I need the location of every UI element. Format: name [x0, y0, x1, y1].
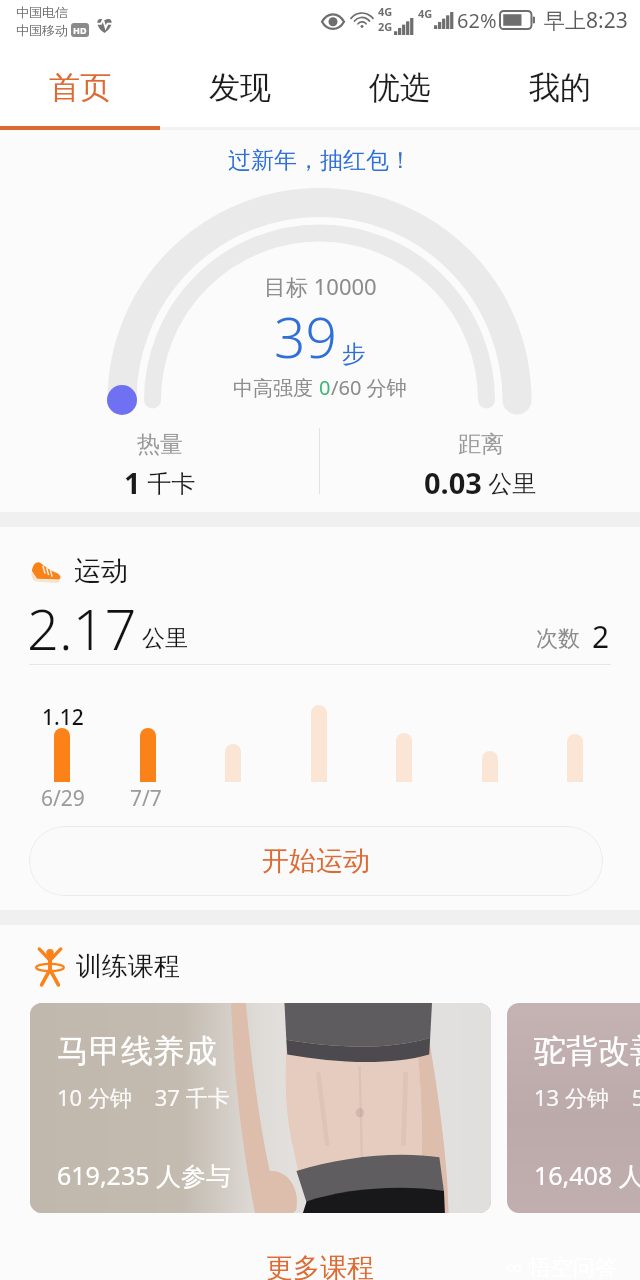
button[interactable]: 热量: [0, 413, 320, 499]
staticText: 更多课程: [266, 1251, 374, 1280]
button[interactable]: 首页: [0, 46, 160, 130]
button[interactable]: 运动: [26, 546, 142, 596]
staticText: 千卡: [141, 466, 196, 499]
staticText: 4G: [378, 4, 393, 19]
staticText: 62%: [457, 7, 497, 34]
staticText: 1: [124, 463, 141, 499]
staticText: HD: [73, 24, 87, 36]
staticText: 马甲线养成: [57, 1031, 217, 1071]
staticText: 0: [319, 374, 331, 401]
button[interactable]: 开始运动: [29, 826, 603, 896]
staticText: 发现: [209, 68, 271, 107]
staticText: 39: [274, 299, 337, 374]
staticText: 开始运动: [262, 844, 370, 878]
staticText: 热量: [137, 430, 183, 459]
staticText: 目标 10000: [264, 271, 377, 301]
staticText: 7/7: [130, 784, 162, 813]
staticText: 0.03: [424, 463, 482, 499]
staticText: 中国电信: [16, 4, 68, 20]
staticText: 早上8:23: [544, 6, 628, 35]
button[interactable]: 驼背改善: [507, 1003, 640, 1213]
staticText: 16,408 人: [534, 1158, 640, 1192]
staticText: 公里: [482, 466, 537, 499]
staticText: /60 分钟: [331, 374, 407, 401]
staticText: 我的: [529, 68, 591, 107]
button[interactable]: 我的: [480, 46, 640, 130]
button[interactable]: 优选: [320, 46, 480, 130]
staticText: 优选: [369, 68, 431, 107]
staticText: 运动: [74, 554, 128, 588]
staticText: 次数: [536, 625, 580, 653]
staticText: 中高强度: [233, 374, 319, 401]
button[interactable]: 马甲线养成: [30, 1003, 491, 1213]
button[interactable]: 过新年，抽红包！: [0, 137, 640, 183]
staticText: 13 分钟 5: [534, 1082, 640, 1112]
staticText: 6/29: [41, 784, 85, 813]
staticText: 步: [342, 339, 366, 369]
staticText: 距离: [458, 430, 504, 459]
button[interactable]: 训练课程: [31, 942, 186, 990]
button[interactable]: 更多课程: [0, 1243, 640, 1280]
button[interactable]: 距离: [320, 413, 640, 499]
staticText: 中国移动: [16, 22, 68, 38]
staticText: 2G: [378, 19, 393, 34]
staticText: 4G: [418, 6, 433, 21]
button[interactable]: 发现: [160, 46, 320, 130]
staticText: 公里: [142, 624, 188, 653]
staticText: 训练课程: [76, 950, 180, 983]
staticText: 过新年，抽红包！: [228, 146, 412, 175]
staticText: 2.17: [27, 590, 137, 666]
staticText: 619,235 人参与: [57, 1158, 232, 1192]
staticText: 10 分钟 37 千卡: [57, 1082, 230, 1112]
staticText: 首页: [49, 68, 111, 107]
staticText: 驼背改善: [534, 1031, 640, 1071]
staticText: 1.12: [42, 703, 84, 732]
staticText: 2: [592, 616, 610, 657]
